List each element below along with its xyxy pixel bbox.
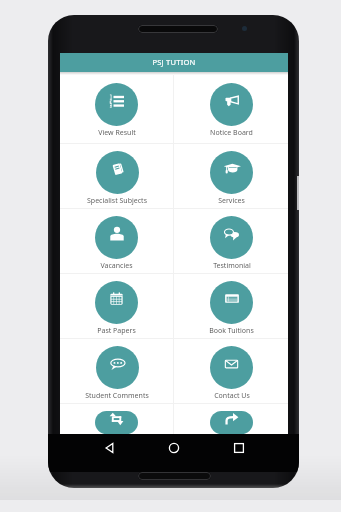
staticText: Contact Us [214, 391, 250, 401]
button[interactable]: Share [174, 404, 288, 434]
button[interactable]: Testimonial [174, 209, 288, 273]
staticText: Past Papers [97, 326, 136, 336]
staticText: Services [218, 196, 245, 206]
staticText: View Result [98, 128, 136, 138]
staticText: Book Tuitions [209, 326, 254, 336]
button[interactable]: Vacancies [60, 209, 173, 273]
button[interactable]: Services [174, 144, 288, 208]
button[interactable]: Notice Board [174, 75, 288, 143]
button[interactable]: Home [167, 441, 181, 455]
button[interactable]: View Result [60, 75, 173, 143]
staticText: Testimonial [213, 261, 251, 271]
button[interactable]: Student Comments [60, 339, 173, 403]
button[interactable]: Refresh [60, 404, 173, 434]
button[interactable]: Past Papers [60, 274, 173, 338]
button[interactable]: Specialist Subjects [60, 144, 173, 208]
staticText: Vacancies [100, 261, 133, 271]
staticText: Notice Board [210, 128, 253, 138]
button[interactable]: Back [103, 441, 117, 455]
staticText: Specialist Subjects [87, 196, 147, 206]
button[interactable]: Recents [232, 441, 246, 455]
button[interactable]: Book Tuitions [174, 274, 288, 338]
button[interactable]: Contact Us [174, 339, 288, 403]
staticText: PSJ TUTION [152, 57, 196, 67]
staticText: Student Comments [85, 391, 149, 401]
